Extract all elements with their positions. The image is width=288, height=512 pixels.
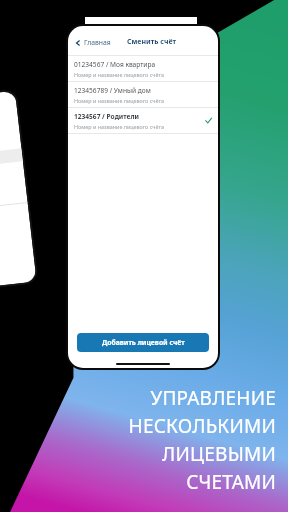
staticText: Номер и название лицевого счёта bbox=[74, 97, 164, 104]
staticText: Главная bbox=[84, 38, 111, 47]
button[interactable]: Главная bbox=[73, 36, 113, 49]
button[interactable]: Сменить счёт bbox=[124, 35, 179, 49]
staticText: Номер и название лицевого счёта bbox=[74, 123, 164, 130]
staticText: УПРАВЛЕНИЕ bbox=[150, 385, 276, 411]
staticText: Добавить лицевой счёт bbox=[102, 338, 185, 347]
button[interactable]: 1234567 / Родители bbox=[68, 108, 218, 133]
staticText: Сменить счёт bbox=[127, 37, 176, 47]
staticText: 123456789 / Умный дом bbox=[74, 86, 151, 95]
staticText: Номер и название лицевого счёта bbox=[74, 71, 164, 78]
button[interactable]: Добавить лицевой счёт bbox=[77, 333, 209, 352]
other: Selected bbox=[205, 117, 212, 124]
staticText: СЧЕТАМИ bbox=[186, 469, 276, 495]
button[interactable]: 01234567 / Моя квартира bbox=[68, 56, 218, 81]
button[interactable]: 123456789 / Умный дом bbox=[68, 82, 218, 107]
staticText: НЕСКОЛЬКИМИ bbox=[128, 413, 276, 439]
staticText: 01234567 / Моя квартира bbox=[74, 60, 156, 69]
staticText: ЛИЦЕВЫМИ bbox=[162, 441, 276, 467]
staticText: 1234567 / Родители bbox=[74, 112, 139, 121]
